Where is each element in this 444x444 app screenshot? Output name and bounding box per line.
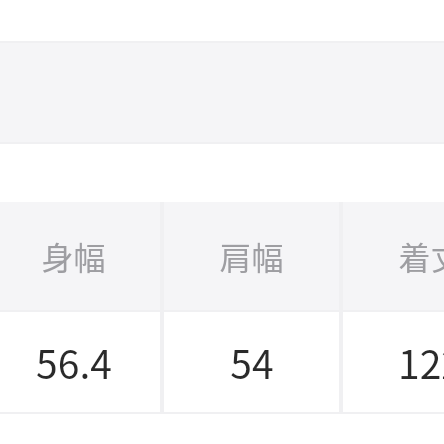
staticText: 56.4 — [36, 334, 112, 390]
staticText: 肩幅 — [219, 233, 284, 279]
staticText: 着丈 — [398, 233, 444, 279]
staticText: 54 — [230, 334, 274, 390]
staticText: 身幅 — [41, 233, 106, 279]
button[interactable]: 肩幅 — [164, 202, 339, 310]
staticText: 122 — [398, 334, 444, 390]
button[interactable]: 着丈 — [343, 202, 444, 310]
button[interactable]: 122 — [343, 312, 444, 412]
button[interactable]: 54 — [164, 312, 339, 412]
button[interactable]: 身幅 — [0, 202, 161, 310]
button[interactable]: 56.4 — [0, 312, 161, 412]
